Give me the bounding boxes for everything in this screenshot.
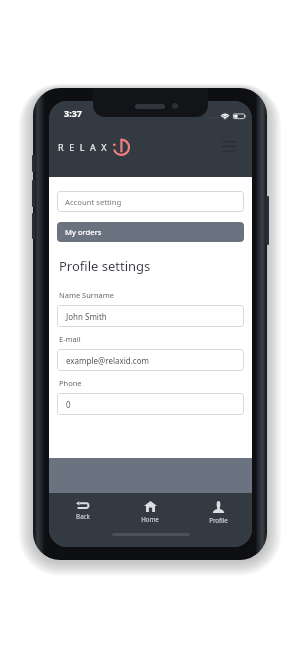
button[interactable]: Profile <box>184 493 252 524</box>
button[interactable]: Account setting <box>57 191 244 212</box>
button[interactable]: My orders <box>57 222 244 242</box>
staticText: Back <box>76 512 90 520</box>
button[interactable]: Home <box>116 493 184 523</box>
staticText: 3:37 <box>64 107 82 119</box>
staticText: Profile settings <box>59 257 151 275</box>
button[interactable]: Menu <box>218 135 240 157</box>
staticText: Profile <box>209 516 228 524</box>
button[interactable]: example@relaxid.com <box>57 349 244 371</box>
staticText: Phone <box>59 378 82 388</box>
staticText: Name Surname <box>59 290 115 300</box>
staticText: 0 <box>66 399 71 410</box>
staticText: E-mail <box>59 334 81 344</box>
staticText: example@relaxid.com <box>66 355 149 366</box>
staticText: Account setting <box>65 197 122 207</box>
button[interactable]: 0 <box>57 393 244 415</box>
staticText: My orders <box>65 227 102 237</box>
staticText: Home <box>141 515 159 523</box>
button[interactable]: John Smith <box>57 305 244 327</box>
button[interactable]: Back <box>49 493 116 520</box>
staticText: R E L A X <box>58 141 109 153</box>
staticText: John Smith <box>66 311 107 322</box>
